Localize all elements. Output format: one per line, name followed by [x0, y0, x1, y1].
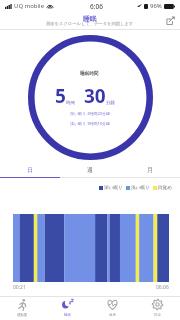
button[interactable]: 月	[120, 163, 180, 177]
button[interactable]: Share	[164, 14, 176, 26]
staticText: 睡眠	[83, 14, 97, 23]
staticText: 月	[147, 166, 153, 174]
button[interactable]: 日	[0, 163, 60, 177]
staticText: 深い眠り	[104, 185, 123, 191]
staticText: 分鐘	[106, 100, 116, 106]
staticText: 深い眠り 2時間20分鐘	[70, 111, 111, 116]
button[interactable]: 運動量	[0, 296, 45, 320]
staticText: 睡眠時間	[80, 71, 99, 77]
staticText: 週	[87, 166, 93, 174]
staticText: 30	[84, 83, 106, 109]
staticText: 健康	[109, 313, 116, 317]
button[interactable]: 健康	[90, 296, 135, 320]
button[interactable]: 週	[60, 163, 120, 177]
staticText: 6:06	[90, 2, 103, 11]
staticText: 目覚め	[158, 185, 172, 191]
staticText: 浅い眠り 3時間10分鐘	[70, 121, 111, 126]
staticText: 設定	[154, 313, 161, 317]
button[interactable]: 設定	[135, 296, 180, 320]
staticText: 96%	[150, 2, 162, 10]
staticText: 5	[55, 83, 66, 109]
staticText: 睡眠	[64, 313, 71, 317]
staticText: 日	[27, 166, 33, 174]
staticText: 00:21	[13, 284, 26, 291]
staticText: UQ mobile	[14, 2, 45, 10]
staticText: 運動量	[17, 313, 28, 317]
staticText: 06:06	[156, 284, 169, 291]
staticText: 画面をスクロールして、データを同期します	[46, 21, 134, 26]
staticText: 浅い眠り	[131, 185, 150, 191]
button[interactable]: 睡眠	[45, 296, 90, 320]
staticText: 時間	[66, 100, 75, 106]
